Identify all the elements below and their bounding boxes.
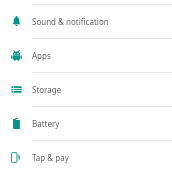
staticText: Battery — [32, 118, 60, 129]
button[interactable]: Sound and notification — [0, 5, 172, 38]
button[interactable]: Battery — [0, 107, 172, 140]
staticText: Sound & notification — [32, 16, 109, 27]
other: Battery — [11, 118, 22, 129]
other: Sound and notification — [11, 16, 22, 27]
button[interactable]: Apps — [0, 39, 172, 72]
other: Apps — [11, 50, 22, 61]
other: Tap and pay — [11, 152, 22, 163]
button[interactable]: Storage — [0, 73, 172, 106]
staticText: Tap & pay — [32, 152, 69, 163]
button[interactable]: Tap and pay — [0, 141, 172, 172]
other: Storage — [11, 84, 22, 95]
staticText: Apps — [32, 50, 51, 61]
staticText: Storage — [32, 84, 62, 95]
